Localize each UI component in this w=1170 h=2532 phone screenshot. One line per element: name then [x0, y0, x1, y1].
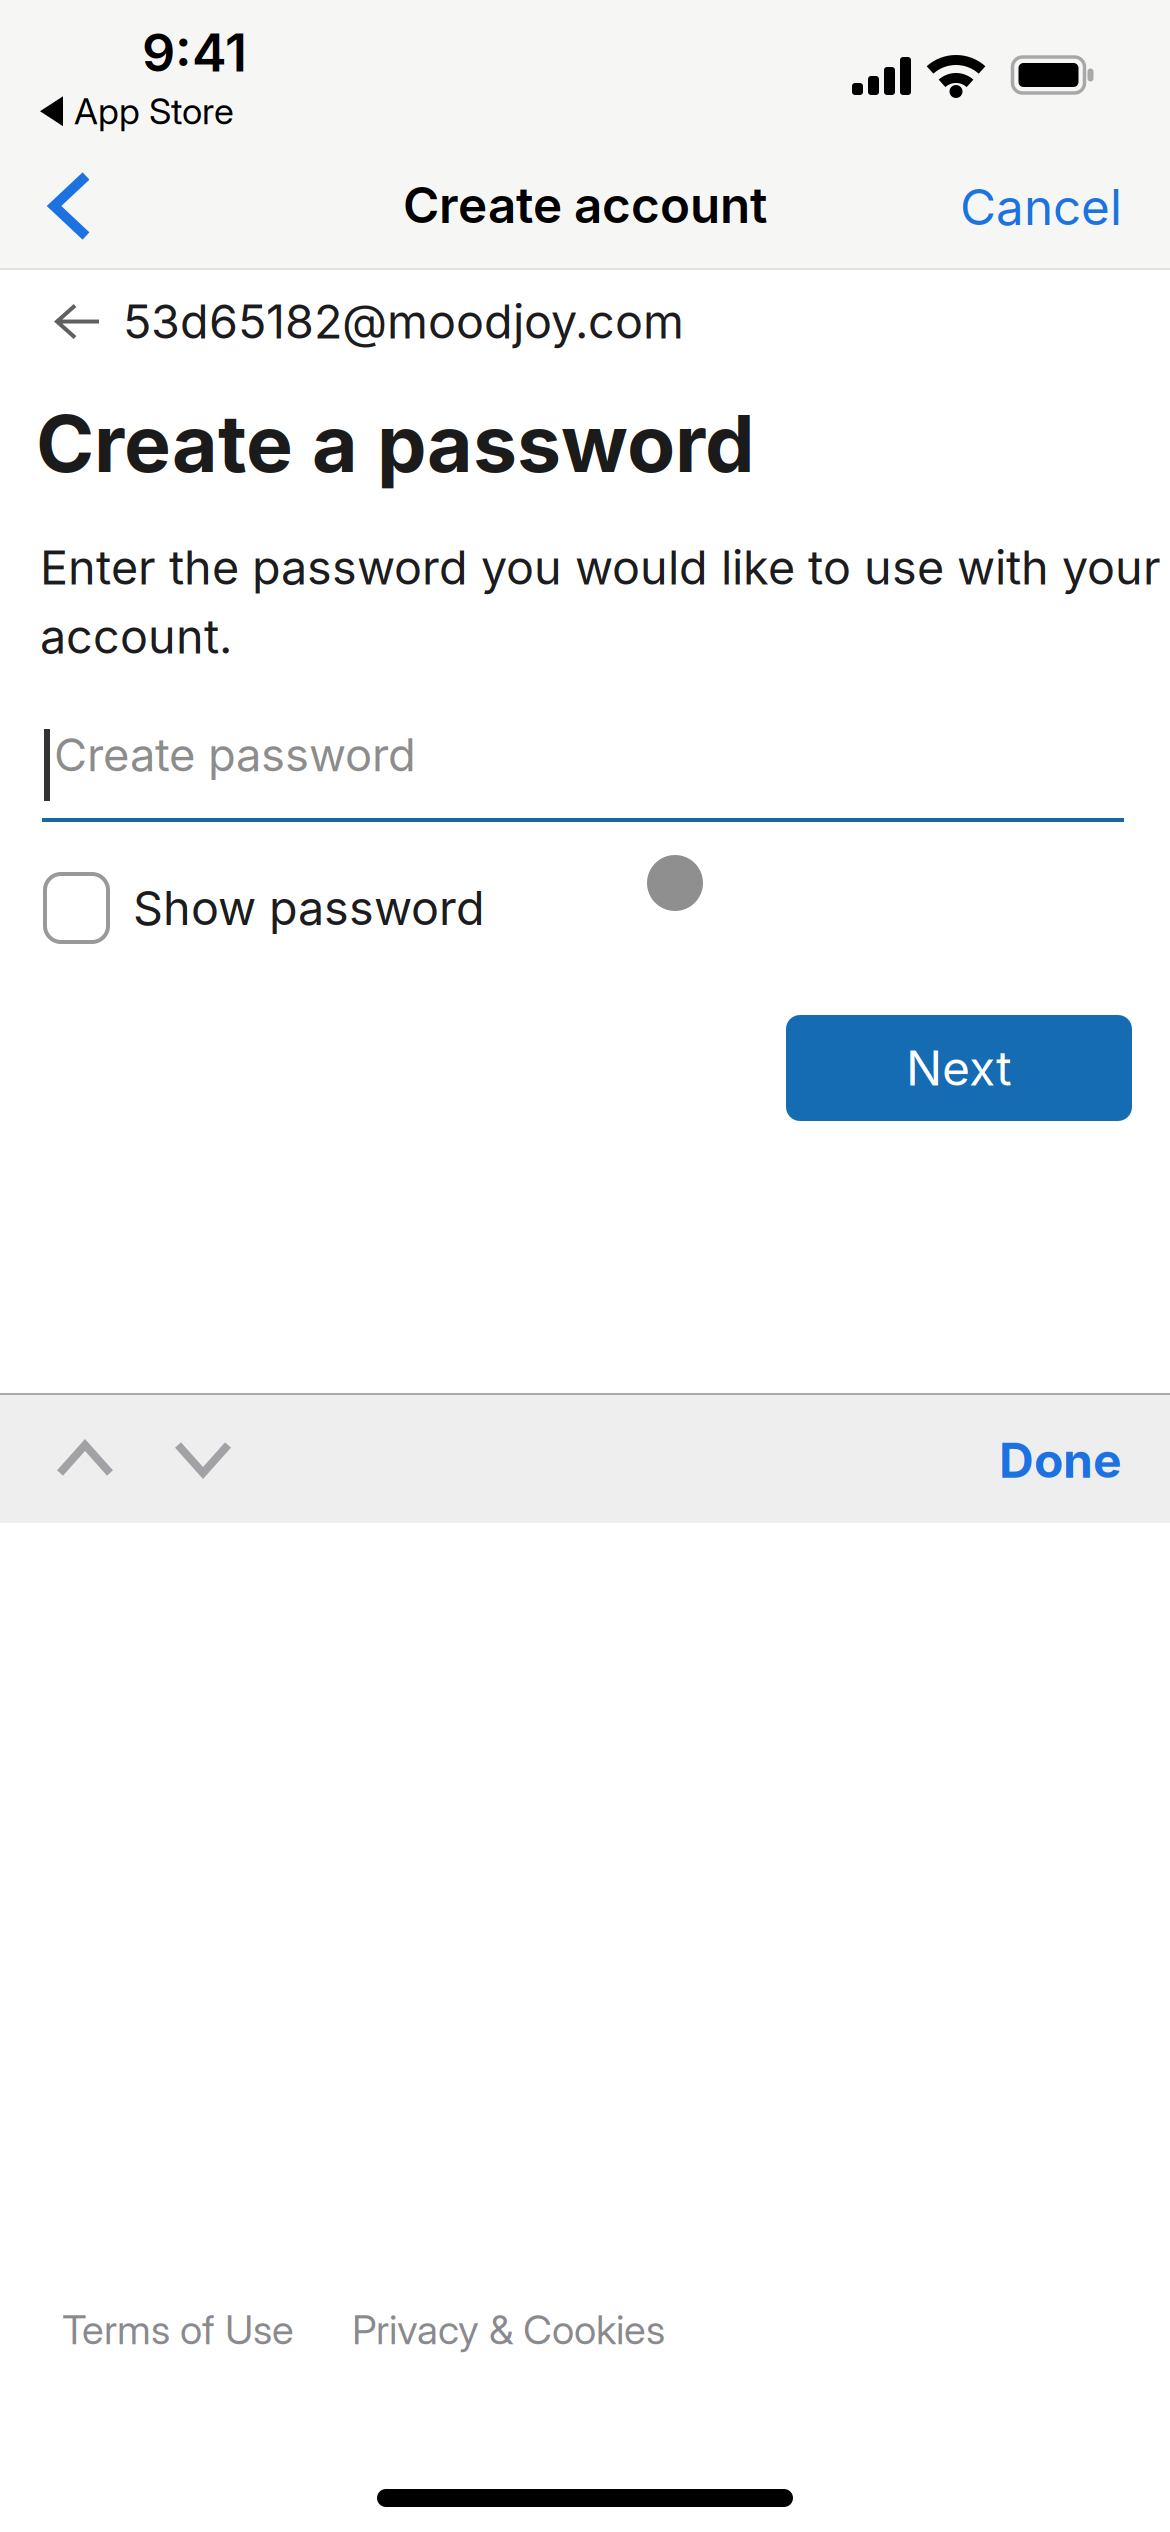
button[interactable]: Next — [786, 1015, 1132, 1121]
staticText: Terms of Use — [62, 2306, 294, 2353]
button[interactable]: Back — [48, 171, 92, 241]
staticText: Cancel — [960, 178, 1122, 236]
staticText: Create password — [54, 728, 416, 781]
button[interactable]: Previous field — [56, 1440, 114, 1478]
staticText: Next — [906, 1040, 1012, 1096]
button[interactable]: Done — [999, 1432, 1122, 1489]
button[interactable]: Back to email — [55, 294, 684, 349]
button[interactable]: Privacy & Cookies — [352, 2306, 665, 2353]
staticText: Done — [999, 1432, 1122, 1489]
staticText: account. — [40, 609, 232, 664]
staticText: Create account — [403, 176, 767, 234]
staticText: Show password — [133, 880, 485, 936]
staticText: 53d65182@moodjoy.com — [123, 294, 684, 349]
staticText: App Store — [74, 90, 234, 132]
staticText: 9:41 — [142, 22, 247, 83]
button[interactable]: Show password — [45, 874, 485, 942]
button[interactable]: Back to App Store — [40, 90, 234, 132]
staticText: Privacy & Cookies — [352, 2306, 665, 2353]
staticText: Enter the password you would like to use… — [40, 540, 1161, 595]
button[interactable]: Next field — [174, 1440, 232, 1478]
button[interactable]: Terms of Use — [62, 2306, 294, 2353]
button[interactable]: Cancel — [960, 178, 1122, 236]
staticText: Create a password — [36, 397, 755, 490]
